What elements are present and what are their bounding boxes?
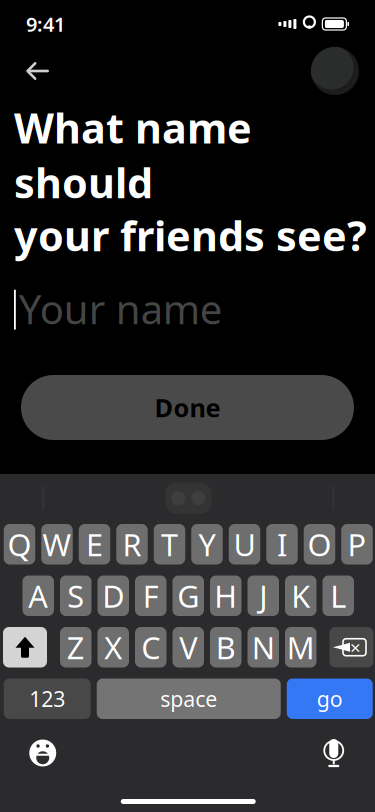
staticText: R [122, 524, 141, 565]
staticText: J [259, 575, 267, 616]
button[interactable]: V [172, 627, 204, 667]
button[interactable]: W [41, 524, 73, 564]
staticText: Z [67, 627, 85, 668]
button[interactable]: E [79, 524, 110, 564]
staticText: M [287, 627, 315, 668]
staticText: 9:41 [26, 11, 65, 37]
button[interactable]: L [322, 575, 354, 616]
staticText: I [277, 524, 287, 565]
button[interactable]: N [247, 627, 279, 667]
staticText: P [347, 524, 366, 565]
button[interactable]: Z [60, 627, 91, 667]
staticText: T [161, 524, 178, 565]
button[interactable]: D [97, 575, 129, 616]
staticText: space [160, 685, 217, 713]
button[interactable]: Y [191, 524, 223, 564]
button[interactable]: G [172, 575, 204, 616]
button[interactable]: X [97, 627, 129, 667]
staticText: G [177, 575, 199, 616]
staticText: N [252, 627, 275, 668]
button[interactable]: S [60, 575, 91, 616]
button[interactable]: P [341, 524, 373, 564]
button[interactable]: Profile [311, 47, 359, 95]
button[interactable]: I [266, 524, 298, 564]
staticText: your friends see? [14, 208, 367, 263]
button[interactable]: B [210, 627, 241, 667]
button[interactable]: U [229, 524, 260, 564]
button[interactable]: space [97, 678, 281, 719]
staticText: K [291, 575, 310, 616]
button[interactable]: Dictation [314, 733, 354, 773]
button[interactable]: H [210, 575, 241, 616]
staticText: Done [154, 391, 220, 424]
button[interactable]: Delete [329, 627, 373, 667]
staticText: Your name [19, 282, 223, 335]
staticText: D [102, 575, 124, 616]
button[interactable]: 123 [4, 678, 91, 719]
staticText: What name should [14, 100, 252, 210]
staticText: Y [198, 524, 215, 565]
button[interactable]: R [116, 524, 148, 564]
staticText: U [233, 524, 255, 565]
staticText: B [216, 627, 236, 668]
button[interactable]: J [247, 575, 279, 616]
button[interactable]: Done [21, 375, 354, 440]
button[interactable]: Emoji [23, 733, 63, 773]
staticText: 123 [29, 685, 65, 713]
staticText: go [317, 685, 343, 713]
staticText: F [143, 575, 159, 616]
button[interactable]: Q [4, 524, 35, 564]
staticText: C [141, 627, 160, 668]
button[interactable]: K [285, 575, 316, 616]
staticText: X [104, 627, 122, 668]
button[interactable]: T [154, 524, 185, 564]
staticText: O [307, 524, 331, 565]
button[interactable]: O [304, 524, 335, 564]
staticText: H [214, 575, 237, 616]
staticText: V [179, 627, 197, 668]
staticText: A [28, 575, 48, 616]
staticText: × [350, 635, 361, 660]
staticText: Q [7, 524, 31, 565]
staticText: S [67, 575, 84, 616]
button[interactable]: M [285, 627, 316, 667]
button[interactable]: A [22, 575, 54, 616]
staticText: W [42, 524, 71, 565]
staticText: E [86, 524, 103, 565]
button[interactable]: F [135, 575, 166, 616]
button[interactable]: C [135, 627, 166, 667]
button[interactable]: go [287, 678, 373, 719]
staticText: L [330, 575, 346, 616]
button[interactable]: Shift [3, 627, 47, 667]
button[interactable]: Back [16, 51, 60, 91]
